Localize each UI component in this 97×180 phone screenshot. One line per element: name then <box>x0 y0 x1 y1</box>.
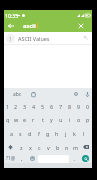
button[interactable]: Voice input <box>82 88 92 100</box>
staticText: y <box>50 116 53 123</box>
staticText: r <box>32 116 35 123</box>
staticText: m <box>73 144 79 151</box>
staticText: 8 <box>68 103 72 110</box>
button[interactable]: 4 <box>29 100 38 113</box>
button[interactable]: g <box>43 126 52 140</box>
staticText: 5 <box>41 103 45 110</box>
button[interactable]: b <box>53 140 62 154</box>
staticText: a <box>10 130 14 137</box>
button[interactable]: e <box>20 113 29 126</box>
button[interactable]: v <box>44 140 53 154</box>
staticText: g <box>46 130 50 137</box>
staticText: l <box>83 130 85 137</box>
staticText: p <box>86 116 90 123</box>
button[interactable]: r <box>29 113 38 126</box>
staticText: ?1@ <box>6 155 16 162</box>
staticText: u <box>59 116 63 123</box>
button[interactable]: n <box>62 140 71 154</box>
staticText: , <box>21 155 23 162</box>
staticText: f <box>38 130 40 137</box>
button[interactable]: 7 <box>56 100 65 113</box>
button[interactable]: o <box>74 113 83 126</box>
staticText: z <box>20 144 23 151</box>
button[interactable]: 3 <box>20 100 29 113</box>
staticText: n <box>65 144 69 151</box>
button[interactable]: a <box>8 126 16 140</box>
button[interactable]: abc <box>8 88 26 100</box>
staticText: ASCII Values <box>18 35 50 42</box>
staticText: s <box>19 130 22 137</box>
staticText: 4 <box>32 103 36 110</box>
button[interactable]: 8 <box>65 100 74 113</box>
button[interactable]: f <box>34 126 43 140</box>
button[interactable]: Search <box>79 154 92 163</box>
staticText: t <box>42 116 44 123</box>
button[interactable]: 1 <box>4 100 12 113</box>
button[interactable]: l <box>79 126 88 140</box>
button[interactable]: Settings <box>70 88 82 100</box>
staticText: 7 <box>59 103 63 110</box>
button[interactable]: z <box>17 140 26 154</box>
button[interactable]: q <box>4 113 12 126</box>
staticText: 3 <box>23 103 27 110</box>
button[interactable]: 0 <box>83 100 92 113</box>
staticText: h <box>55 130 59 137</box>
staticText: v <box>47 144 50 151</box>
staticText: k <box>73 130 76 137</box>
button[interactable]: Shift <box>4 140 17 154</box>
staticText: c <box>38 144 41 151</box>
staticText: q <box>6 116 10 123</box>
button[interactable]: h <box>52 126 61 140</box>
button[interactable]: Stickers <box>26 88 40 100</box>
staticText: 6 <box>50 103 54 110</box>
button[interactable]: Back <box>4 20 17 32</box>
staticText: b <box>56 144 60 151</box>
button[interactable]: t <box>38 113 47 126</box>
button[interactable]: , <box>17 154 27 163</box>
button[interactable]: y <box>47 113 56 126</box>
button[interactable]: Backspace <box>80 140 92 154</box>
staticText: e <box>23 116 27 123</box>
button[interactable]: j <box>61 126 70 140</box>
staticText: d <box>28 130 32 137</box>
staticText: o <box>77 116 81 123</box>
staticText: ascii <box>23 22 36 30</box>
staticText: w <box>14 116 19 123</box>
button[interactable]: 1 <box>4 32 92 44</box>
button[interactable]: 5 <box>38 100 47 113</box>
button[interactable]: c <box>35 140 44 154</box>
button[interactable]: d <box>25 126 34 140</box>
staticText: . <box>74 155 76 162</box>
button[interactable]: s <box>16 126 25 140</box>
button[interactable]: u <box>56 113 65 126</box>
button[interactable]: p <box>83 113 92 126</box>
button[interactable]: k <box>70 126 79 140</box>
staticText: 2 <box>14 103 18 110</box>
button[interactable]: ?1@ <box>4 154 17 163</box>
staticText: 1 <box>9 36 12 42</box>
staticText: abc <box>13 91 21 98</box>
button[interactable]: Emoji <box>27 154 37 163</box>
button[interactable]: Insert suggestion <box>82 34 90 42</box>
button[interactable]: i <box>65 113 74 126</box>
button[interactable]: 6 <box>47 100 56 113</box>
staticText: x <box>29 144 32 151</box>
staticText: 1 <box>6 103 10 110</box>
button[interactable]: 9 <box>74 100 83 113</box>
button[interactable]: Clear search <box>76 21 86 31</box>
button[interactable]: 2 <box>12 100 20 113</box>
button[interactable]: w <box>12 113 20 126</box>
button[interactable]: m <box>71 140 80 154</box>
staticText: 9 <box>77 103 81 110</box>
staticText: 10:35 <box>5 12 19 19</box>
staticText: j <box>65 130 67 137</box>
button[interactable]: x <box>26 140 35 154</box>
staticText: i <box>69 116 71 123</box>
staticText: 0 <box>86 103 90 110</box>
button[interactable]: . <box>70 154 79 163</box>
